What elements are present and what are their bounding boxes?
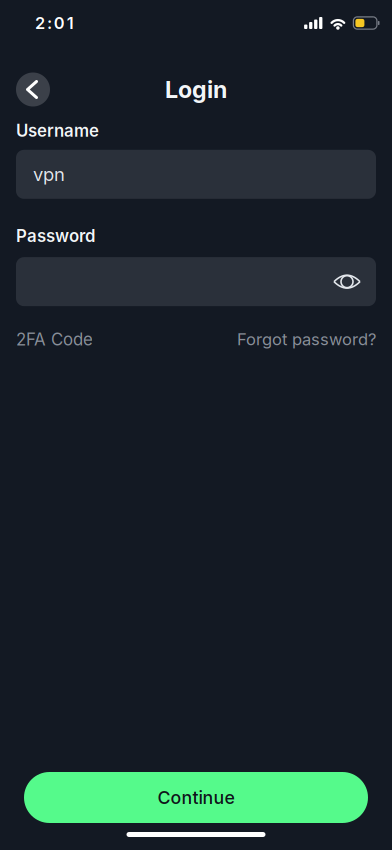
button[interactable]: Show password bbox=[333, 271, 361, 293]
staticText: Continue bbox=[157, 787, 234, 808]
button[interactable]: 2FA Code bbox=[16, 329, 93, 349]
staticText: Login bbox=[165, 75, 227, 104]
staticText: : bbox=[47, 13, 52, 33]
button[interactable]: Forgot password? bbox=[237, 329, 376, 349]
staticText: 2FA Code bbox=[16, 329, 93, 349]
staticText: Forgot password? bbox=[237, 329, 376, 349]
staticText: 1 bbox=[67, 13, 74, 33]
staticText: Password bbox=[16, 226, 95, 246]
button[interactable]: Back bbox=[16, 72, 50, 106]
staticText: 2 bbox=[35, 13, 45, 33]
staticText: vpn bbox=[33, 163, 65, 185]
staticText: 0 bbox=[54, 13, 65, 33]
button[interactable]: Continue bbox=[24, 772, 368, 823]
staticText: Username bbox=[16, 120, 99, 141]
